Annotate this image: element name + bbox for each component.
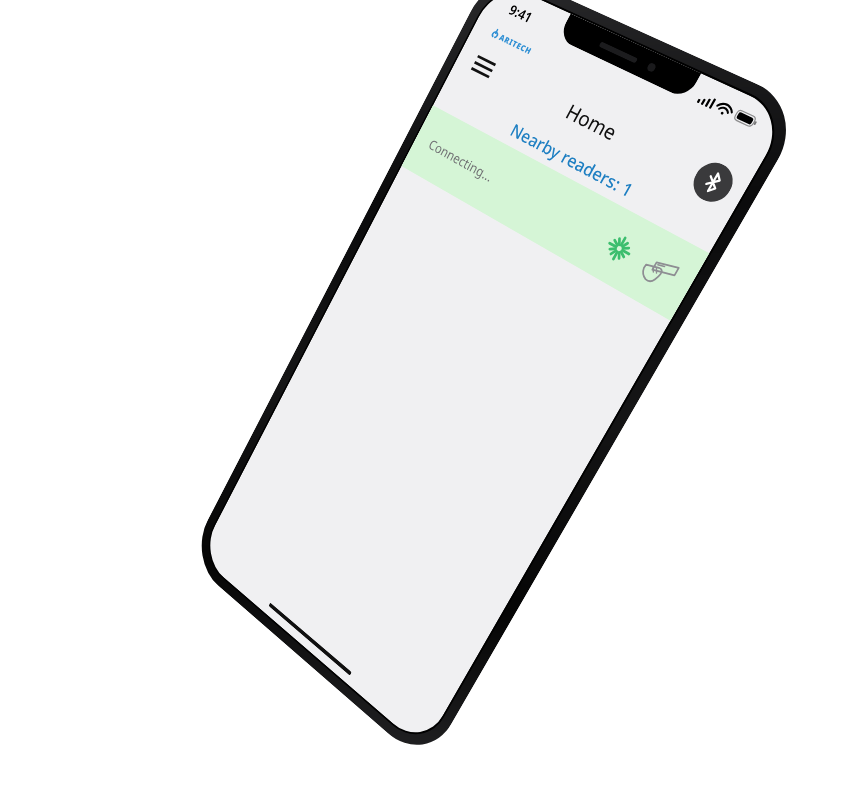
button[interactable]: Open navigation menu (459, 41, 508, 92)
staticText: Connecting... (426, 135, 497, 185)
staticText: ARITECH (498, 31, 534, 56)
staticText: 9:41 (506, 0, 536, 26)
staticText: Nearby readers: 1 (506, 118, 638, 203)
staticText: Home (561, 97, 623, 146)
button[interactable]: Bluetooth (686, 156, 740, 208)
button[interactable]: Connecting... (401, 105, 709, 321)
